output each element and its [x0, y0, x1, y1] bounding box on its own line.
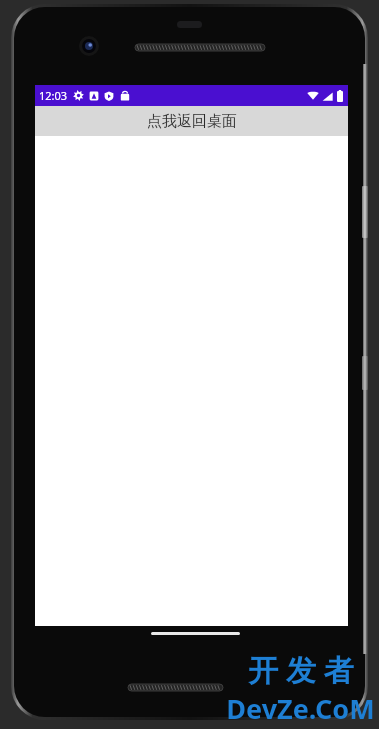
staticText: 12:03 — [39, 88, 68, 103]
staticText: DevZe.CoM — [226, 690, 375, 727]
staticText: 点我返回桌面 — [147, 112, 237, 131]
staticText: 开 发 者 — [248, 649, 354, 690]
button[interactable]: 点我返回桌面 — [35, 106, 348, 136]
